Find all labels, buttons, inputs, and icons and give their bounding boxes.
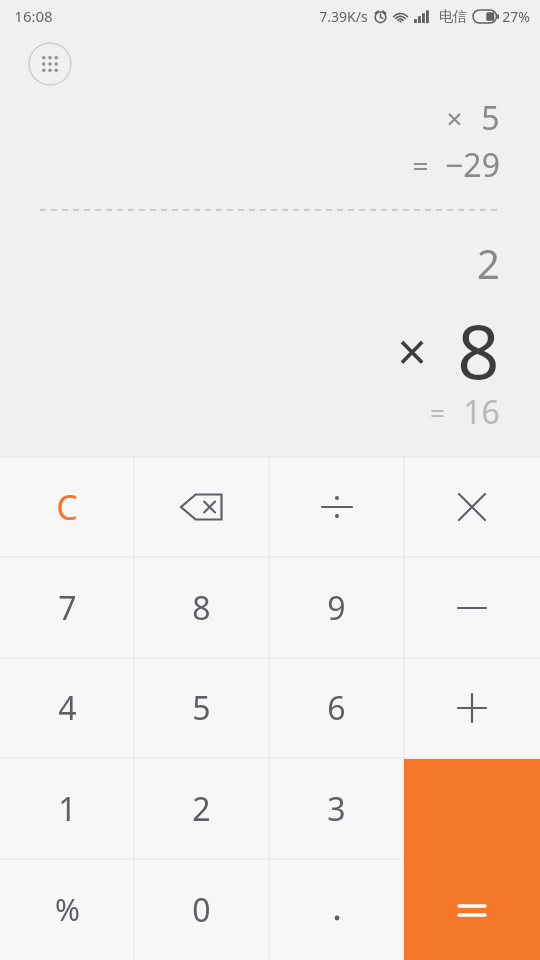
staticText: 2 [477,236,500,290]
staticText: 5 [481,96,500,140]
button[interactable]: Menu [28,42,72,86]
button[interactable]: 3 [269,758,404,859]
button[interactable]: 2 [134,758,269,859]
button[interactable]: 1 [0,758,134,859]
staticText: 16 [463,390,500,434]
staticText: 8 [192,586,211,630]
button[interactable]: Backspace [134,457,269,557]
staticText: × [446,99,463,137]
staticText: 0 [192,888,211,932]
staticText: 6 [327,686,346,730]
button[interactable]: % [0,859,134,960]
staticText: 1 [58,787,77,831]
staticText: 2 [192,787,211,831]
staticText: 3 [327,787,346,831]
staticText: 5 [192,686,211,730]
button[interactable]: 7 [0,557,134,658]
button[interactable] [404,557,540,658]
button[interactable] [269,457,404,557]
staticText: = [412,146,429,184]
staticText: −29 [445,143,500,187]
staticText: × [397,315,427,386]
button[interactable] [404,658,540,758]
button[interactable]: 4 [0,658,134,758]
staticText: = [430,395,445,430]
button[interactable]: 8 [134,557,269,658]
button[interactable] [404,759,540,960]
button[interactable]: 9 [269,557,404,658]
staticText: % [55,889,80,930]
staticText: 16:08 [14,6,53,26]
staticText: 7.39K/s [319,7,368,26]
staticText: C [56,484,78,530]
staticText: 4 [58,686,77,730]
button[interactable]: 6 [269,658,404,758]
button[interactable]: 5 [134,658,269,758]
button[interactable] [404,457,540,557]
staticText: 8 [457,300,500,401]
staticText: 电信 [439,8,467,26]
button[interactable]: 0 [134,859,269,960]
button[interactable] [269,859,404,960]
staticText: 7 [58,586,77,630]
button[interactable]: C [0,457,134,557]
staticText: 9 [327,586,346,630]
staticText: 27% [502,7,530,26]
